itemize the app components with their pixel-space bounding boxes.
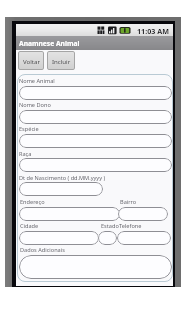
button[interactable] — [19, 231, 99, 245]
staticText: Raça — [19, 150, 32, 158]
button[interactable] — [118, 207, 168, 221]
button[interactable]: Voltar — [18, 51, 44, 70]
button[interactable] — [19, 86, 172, 100]
button[interactable] — [19, 110, 172, 124]
button[interactable] — [19, 255, 172, 279]
staticText: Estado — [101, 222, 119, 230]
staticText: Cidade — [20, 222, 39, 230]
staticText: Anamnese Animal — [19, 39, 80, 48]
button[interactable] — [19, 207, 120, 221]
staticText: Endereço — [20, 198, 45, 206]
staticText: 11:03 AM — [137, 26, 170, 36]
staticText: Dt de Nascimento ( dd.MM.yyyy ) — [19, 174, 106, 182]
staticText: Nome Animal — [19, 77, 55, 85]
other: Status icons — [97, 26, 133, 35]
staticText: Dados Adicionais — [20, 246, 65, 254]
button[interactable]: Incluir — [47, 51, 75, 70]
staticText: Incluir — [52, 57, 71, 65]
button[interactable] — [19, 134, 172, 148]
staticText: Nome Dono — [19, 101, 51, 109]
button[interactable] — [117, 231, 171, 245]
staticText: Espécie — [19, 125, 39, 133]
staticText: Voltar — [23, 57, 40, 65]
button[interactable] — [19, 182, 103, 196]
staticText: Telefone — [119, 222, 142, 230]
button[interactable] — [19, 158, 172, 172]
staticText: Bairro — [120, 198, 137, 206]
button[interactable] — [98, 231, 117, 245]
